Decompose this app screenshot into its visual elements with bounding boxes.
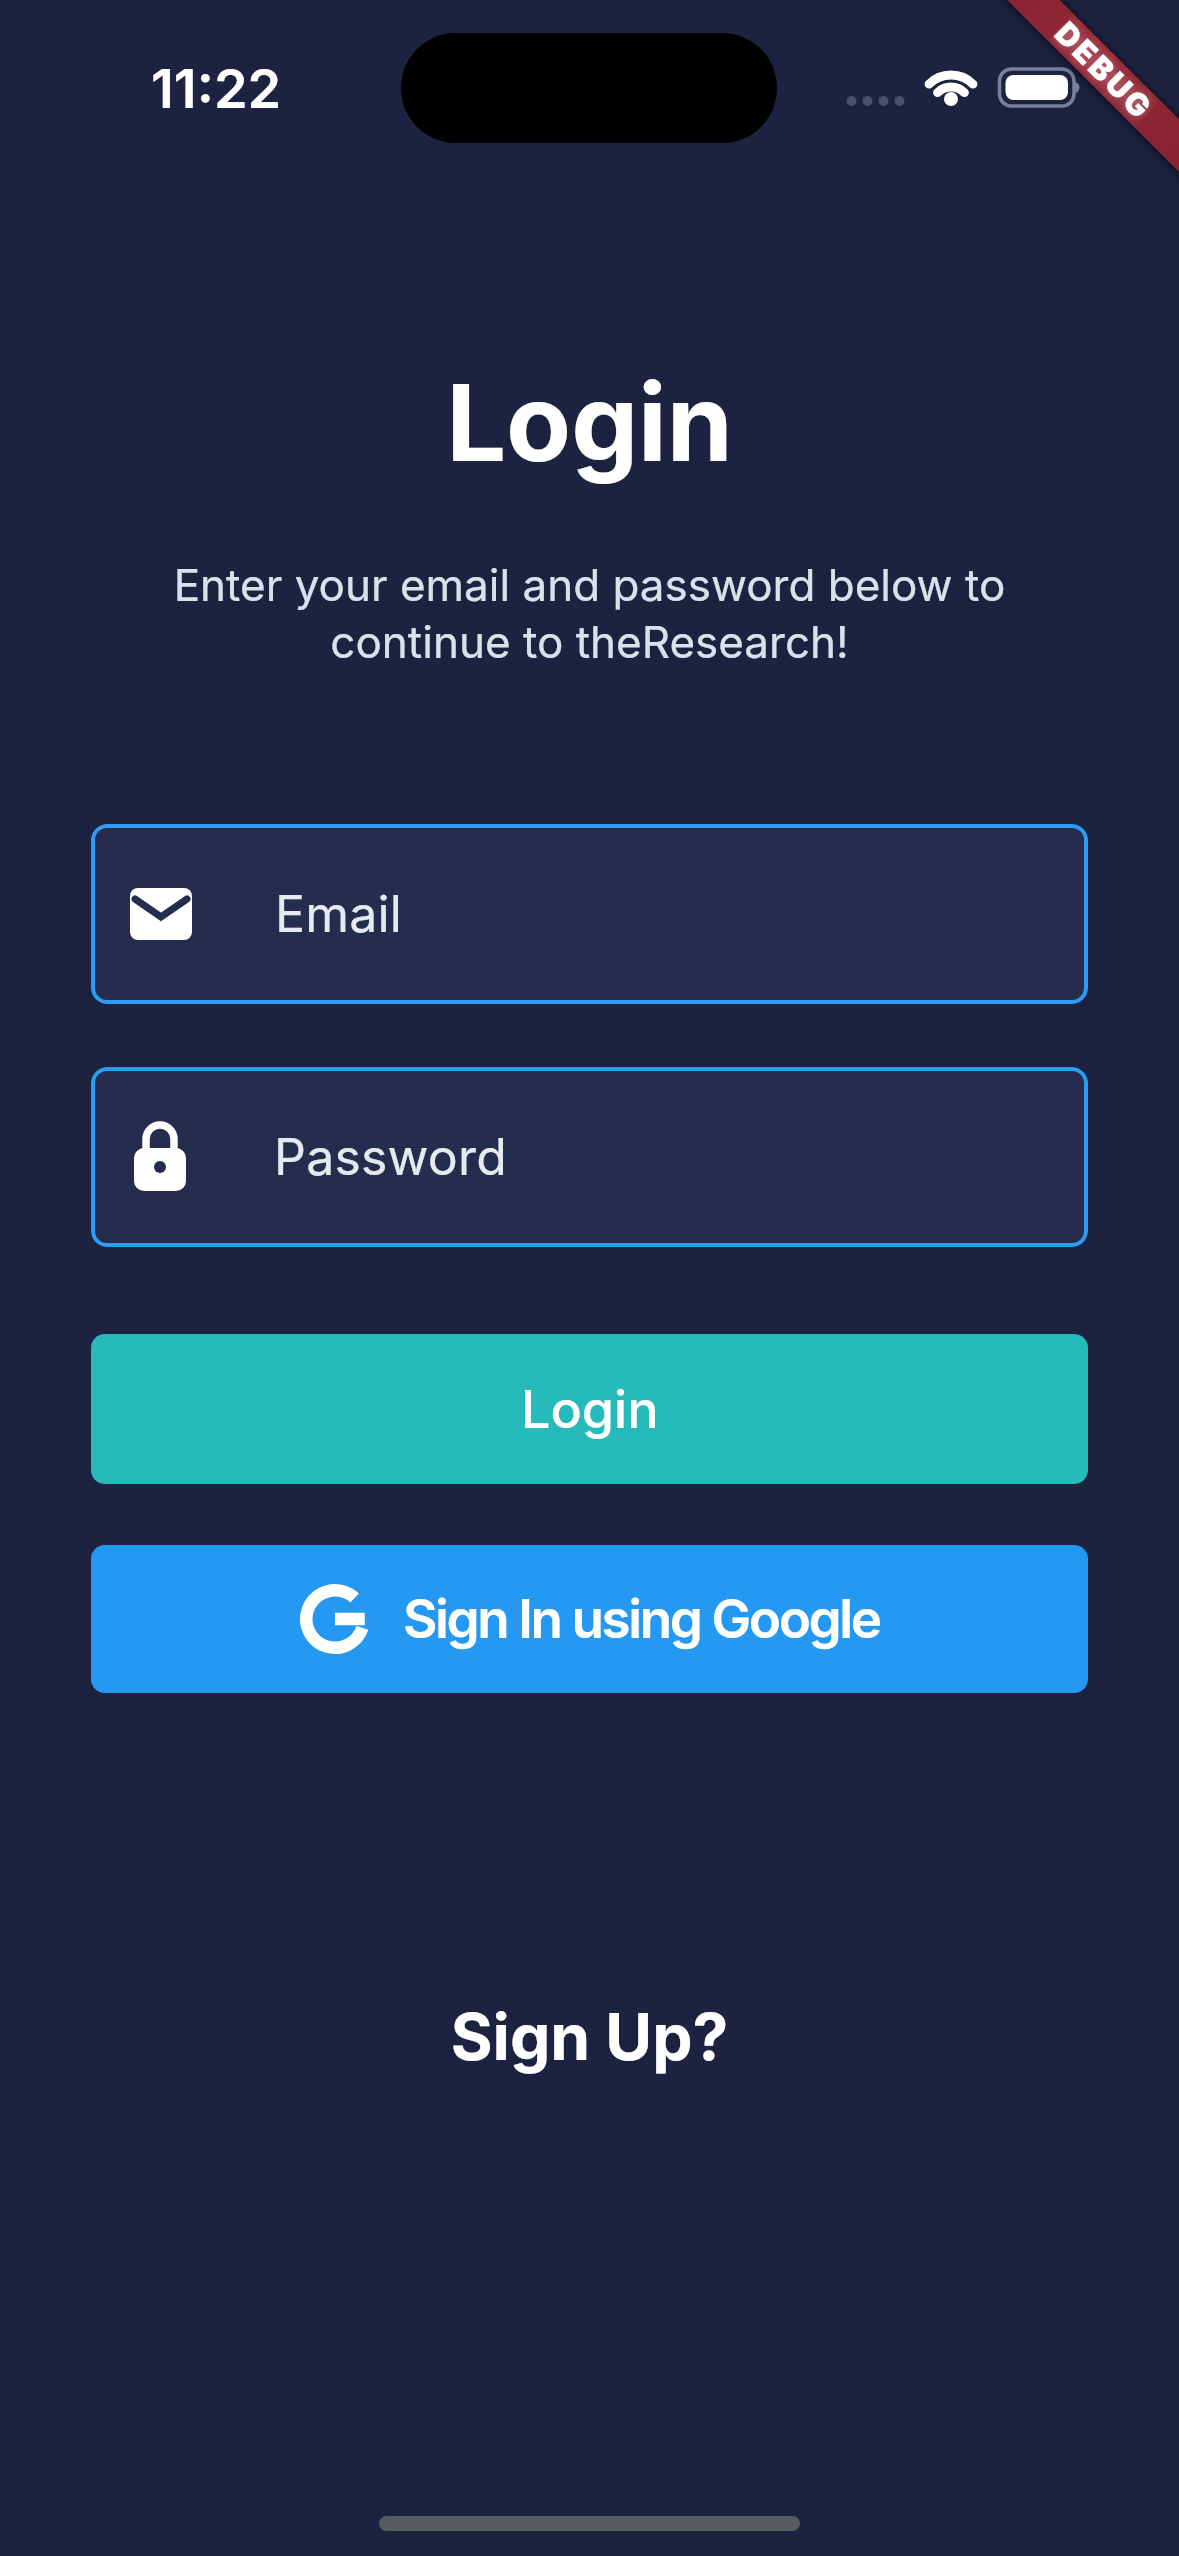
button[interactable]: Email bbox=[91, 824, 1088, 1004]
staticText: Email bbox=[275, 884, 403, 944]
staticText: 11:22 bbox=[151, 56, 282, 121]
staticText: Enter your email and password below to c… bbox=[0, 558, 1179, 669]
staticText: Login bbox=[0, 358, 1179, 486]
button[interactable]: Login bbox=[91, 1334, 1088, 1484]
staticText: Password bbox=[274, 1127, 507, 1187]
staticText: Login bbox=[521, 1378, 659, 1441]
button[interactable]: Password bbox=[91, 1067, 1088, 1247]
button[interactable]: Sign Up? bbox=[0, 1998, 1179, 2075]
staticText: DEBUG bbox=[1048, 14, 1161, 127]
staticText: Sign In using Google bbox=[403, 1587, 880, 1651]
button[interactable]: Sign In using Google bbox=[91, 1545, 1088, 1693]
